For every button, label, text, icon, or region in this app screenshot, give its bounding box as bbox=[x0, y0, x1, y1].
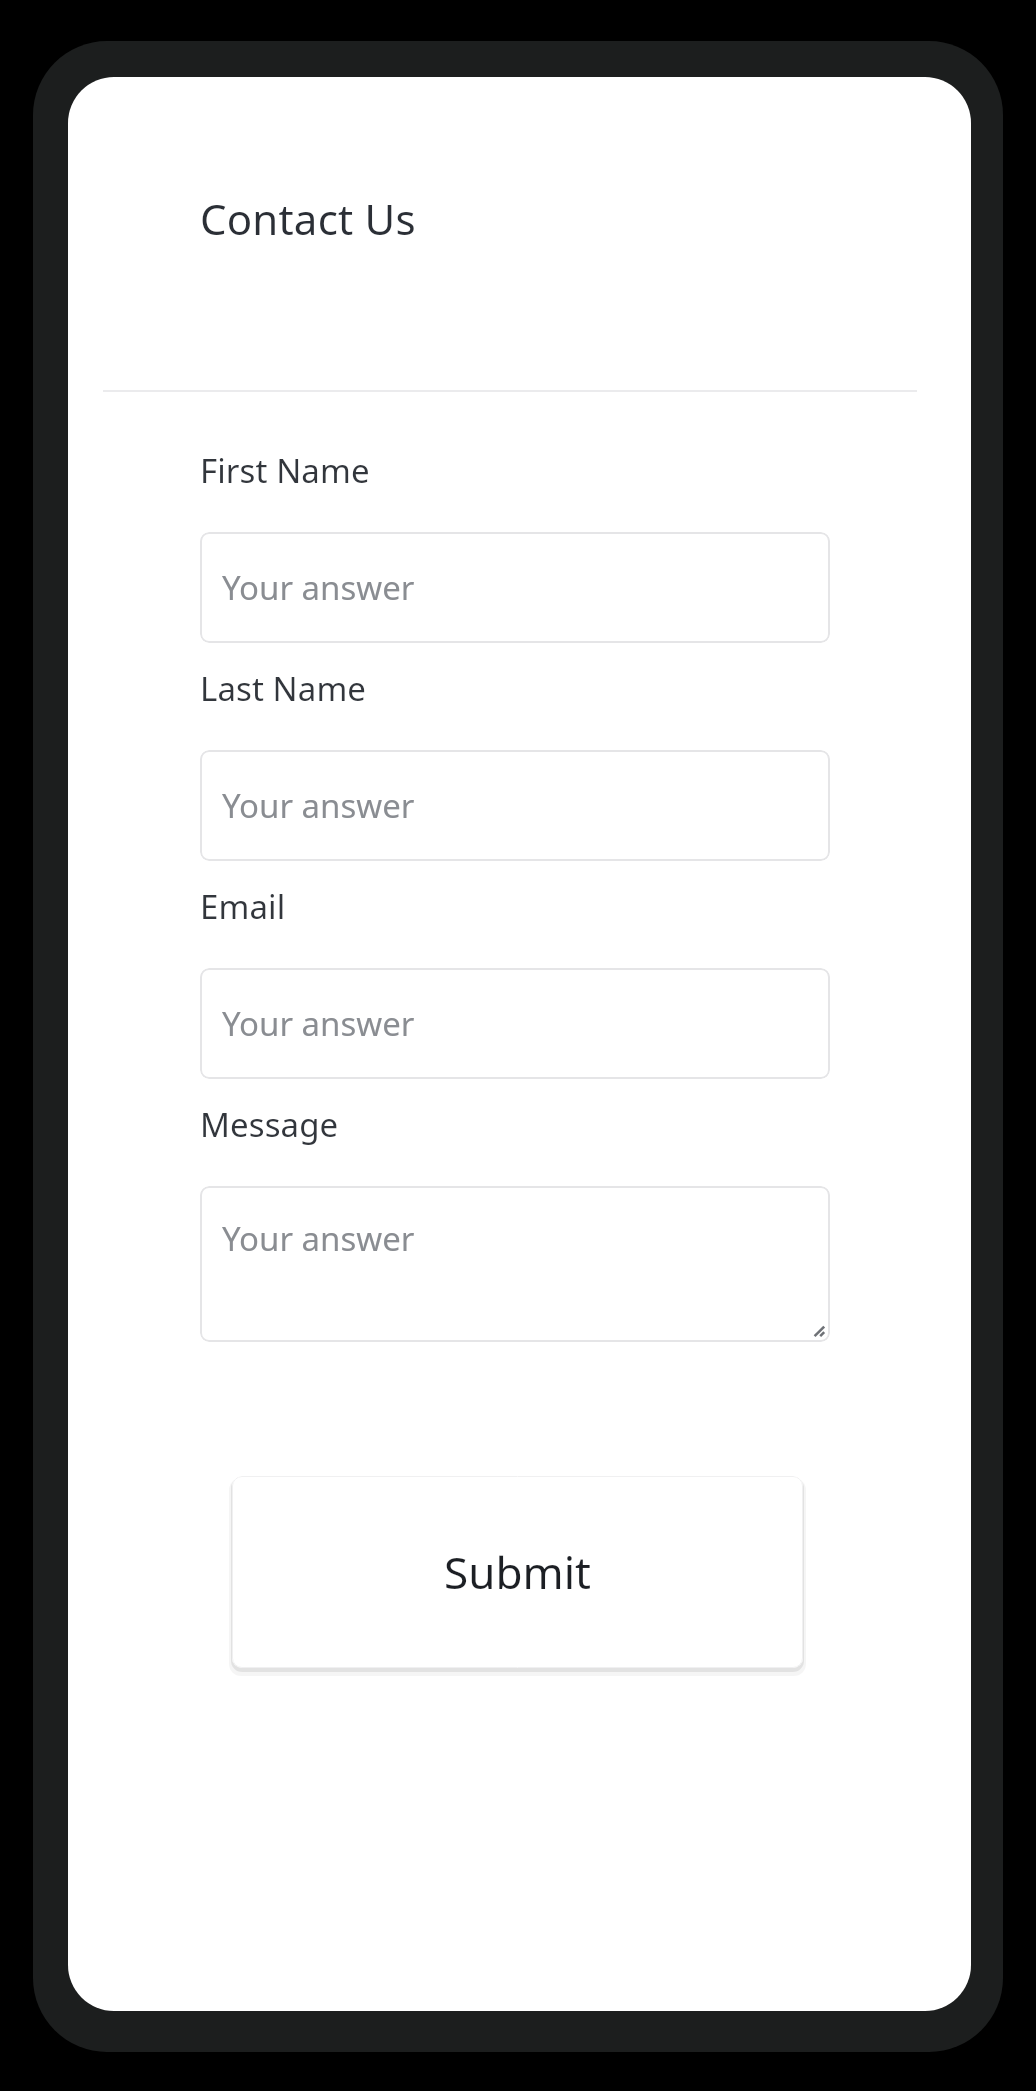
button[interactable]: Your answer bbox=[200, 1186, 830, 1342]
staticText: Your answer bbox=[222, 1001, 415, 1046]
staticText: Your answer bbox=[222, 783, 415, 828]
staticText: Your answer bbox=[222, 1216, 415, 1261]
staticText: Submit bbox=[444, 1542, 591, 1602]
staticText: Message bbox=[200, 1102, 339, 1147]
button[interactable]: Your answer bbox=[200, 532, 830, 643]
staticText: Contact Us bbox=[200, 190, 416, 247]
button[interactable]: Submit bbox=[232, 1476, 803, 1668]
staticText: First Name bbox=[200, 448, 370, 493]
staticText: Last Name bbox=[200, 666, 367, 711]
button[interactable]: Your answer bbox=[200, 968, 830, 1079]
staticText: Email bbox=[200, 884, 286, 929]
button[interactable]: Your answer bbox=[200, 750, 830, 861]
staticText: Your answer bbox=[222, 565, 415, 610]
